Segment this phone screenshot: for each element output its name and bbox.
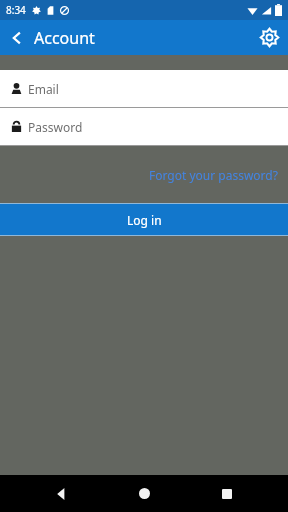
button[interactable]: Recent apps [205,475,249,512]
button[interactable]: Forgot your password? [139,161,288,189]
button[interactable]: Back [39,475,83,512]
staticText: Forgot your password? [149,167,278,183]
staticText: 8:34 [6,3,26,17]
button[interactable]: Log in [0,204,288,235]
button[interactable]: Settings [250,20,288,55]
staticText: Account [34,27,95,49]
staticText: Password [28,119,83,135]
button[interactable]: Email [0,70,288,107]
staticText: Log in [127,212,162,228]
button[interactable]: Home [122,475,166,512]
button[interactable]: Password [0,108,288,145]
staticText: Email [28,81,59,97]
button[interactable]: Back [0,20,34,55]
